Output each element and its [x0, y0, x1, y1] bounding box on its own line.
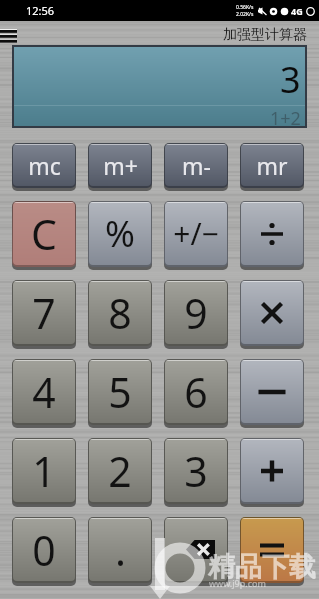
button[interactable]	[12, 201, 76, 267]
staticText: +/−	[173, 213, 219, 254]
button[interactable]: Menu	[0, 29, 17, 43]
button[interactable]	[88, 517, 152, 583]
button[interactable]	[240, 280, 304, 346]
staticText: 3	[184, 443, 208, 499]
staticText: 7	[32, 285, 56, 341]
staticText: %	[105, 209, 135, 258]
staticText: 9	[184, 285, 208, 341]
staticText: m+	[103, 150, 138, 181]
button[interactable]	[240, 359, 304, 425]
staticText: C	[31, 206, 57, 262]
button[interactable]	[12, 359, 76, 425]
other: Minus	[241, 360, 303, 423]
button[interactable]	[240, 201, 304, 267]
other: Multiply	[241, 281, 303, 344]
button[interactable]	[88, 201, 152, 267]
staticText: 3	[280, 55, 301, 104]
staticText: www.j9p.com	[209, 577, 266, 589]
button[interactable]	[164, 517, 228, 583]
staticText: 5	[108, 364, 132, 420]
staticText: 2	[108, 443, 132, 499]
other: Backspace	[165, 518, 227, 581]
button[interactable]	[164, 359, 228, 425]
staticText: 6	[184, 364, 208, 420]
staticText: 加强型计算器	[223, 26, 307, 44]
button[interactable]	[164, 143, 228, 188]
other: Plus	[241, 439, 303, 502]
other: Equals	[241, 518, 303, 581]
button[interactable]	[88, 143, 152, 188]
staticText: 4	[32, 364, 56, 420]
staticText: 2.02K/s	[236, 11, 254, 18]
button[interactable]	[12, 517, 76, 583]
button[interactable]	[88, 280, 152, 346]
button[interactable]	[240, 143, 304, 188]
staticText: 4G	[291, 5, 303, 17]
button[interactable]	[88, 438, 152, 504]
staticText: mc	[28, 150, 61, 181]
staticText: m-	[182, 150, 211, 181]
button[interactable]	[12, 143, 76, 188]
button[interactable]	[12, 280, 76, 346]
button[interactable]	[164, 280, 228, 346]
button[interactable]	[164, 201, 228, 267]
staticText: 1	[32, 443, 56, 499]
button[interactable]	[240, 517, 304, 583]
other: Divide	[241, 202, 303, 265]
staticText: 12:56	[26, 3, 55, 18]
staticText: 0	[32, 522, 56, 578]
staticText: .	[115, 522, 126, 578]
staticText: 1+2	[270, 106, 301, 126]
button[interactable]	[240, 438, 304, 504]
button[interactable]	[164, 438, 228, 504]
staticText: 0.56K/s	[236, 4, 254, 11]
staticText: 精品下载	[208, 550, 316, 584]
button[interactable]	[12, 438, 76, 504]
staticText: 8	[108, 285, 132, 341]
button[interactable]	[88, 359, 152, 425]
staticText: mr	[256, 150, 288, 181]
